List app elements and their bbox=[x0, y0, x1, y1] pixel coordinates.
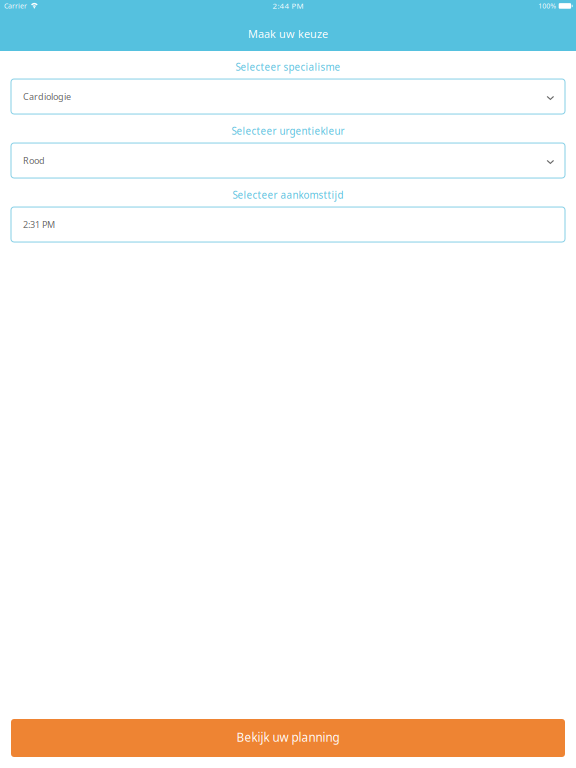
staticText: 2:44 PM bbox=[272, 0, 303, 11]
staticText: Selecteer specialisme bbox=[235, 60, 340, 74]
staticText: Carrier bbox=[4, 1, 27, 10]
staticText: Maak uw keuze bbox=[248, 26, 328, 41]
staticText: Selecteer urgentiekleur bbox=[231, 124, 344, 138]
staticText: Cardiologie bbox=[23, 90, 71, 103]
staticText: Bekijk uw planning bbox=[236, 729, 339, 745]
button[interactable]: 2:31 PM bbox=[11, 207, 565, 242]
button[interactable]: Bekijk uw planning bbox=[11, 719, 565, 757]
staticText: 100% bbox=[538, 1, 556, 10]
button[interactable]: Rood bbox=[11, 143, 565, 178]
staticText: 2:31 PM bbox=[23, 218, 55, 231]
staticText: Selecteer aankomsttijd bbox=[232, 188, 343, 202]
button[interactable]: Cardiologie bbox=[11, 79, 565, 114]
staticText: Rood bbox=[23, 154, 45, 167]
